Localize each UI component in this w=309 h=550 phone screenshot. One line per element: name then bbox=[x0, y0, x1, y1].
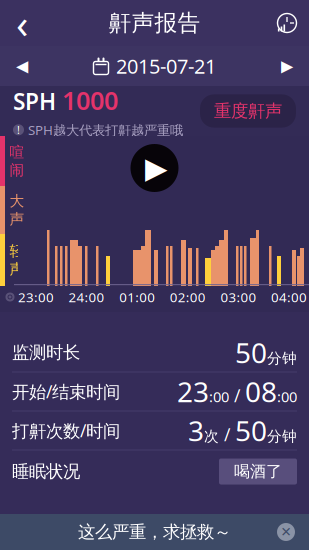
staticText: ▶ bbox=[281, 57, 293, 75]
staticText: ▶ bbox=[145, 151, 168, 185]
staticText: 这么严重，求拯救～ bbox=[78, 521, 231, 543]
staticText: 08 bbox=[245, 373, 277, 410]
staticText: ! bbox=[17, 123, 20, 137]
button[interactable]: 2015-07-21 bbox=[93, 46, 216, 86]
staticText: 3 bbox=[188, 412, 204, 449]
staticText: 1000 bbox=[62, 83, 118, 117]
button[interactable]: Back bbox=[0, 1, 44, 45]
button[interactable]: 这么严重，求拯救～ bbox=[0, 514, 309, 550]
staticText: 04:00 bbox=[271, 288, 307, 306]
staticText: 鼾声报告 bbox=[108, 9, 200, 37]
staticText: 50 bbox=[235, 412, 267, 449]
staticText: 喧 闹 bbox=[9, 143, 24, 179]
staticText: 重度鼾声 bbox=[214, 100, 282, 122]
staticText: 分钟 bbox=[267, 349, 297, 367]
staticText: 01:00 bbox=[119, 288, 155, 306]
staticText: / bbox=[229, 384, 245, 407]
button[interactable]: Next day bbox=[265, 46, 309, 86]
staticText: 监测时长 bbox=[12, 342, 80, 363]
button[interactable]: 重度鼾声 bbox=[200, 94, 296, 128]
staticText: 睡眠状况 bbox=[12, 461, 80, 482]
staticText: :00 bbox=[277, 387, 297, 406]
staticText: / bbox=[219, 423, 235, 446]
staticText: SPH bbox=[13, 86, 56, 116]
staticText: 2015-07-21 bbox=[116, 53, 216, 79]
staticText: 大 声 bbox=[9, 192, 24, 228]
staticText: 23 bbox=[177, 373, 209, 410]
staticText: 次 bbox=[204, 427, 219, 445]
staticText: ✕ bbox=[280, 524, 291, 539]
staticText: 23:00 bbox=[18, 288, 54, 306]
staticText: :00 bbox=[209, 387, 229, 406]
button[interactable]: Previous day bbox=[0, 46, 44, 86]
staticText: 喝酒了 bbox=[234, 462, 282, 481]
staticText: 开始/结束时间 bbox=[12, 380, 120, 403]
staticText: ◀ bbox=[16, 57, 28, 75]
staticText: 24:00 bbox=[69, 288, 105, 306]
button[interactable]: Play snoring recording bbox=[130, 144, 178, 192]
staticText: 轻 声 bbox=[9, 242, 24, 278]
staticText: 打鼾次数/时间 bbox=[12, 419, 120, 442]
staticText: 02:00 bbox=[170, 288, 206, 306]
staticText: SPH越大代表打鼾越严重哦 bbox=[28, 121, 183, 139]
button[interactable]: 喝酒了 bbox=[219, 458, 297, 484]
staticText: ‹ bbox=[16, 0, 28, 49]
staticText: 03:00 bbox=[220, 288, 256, 306]
staticText: 50 bbox=[235, 334, 267, 371]
button[interactable]: History bbox=[265, 1, 309, 45]
staticText: 分钟 bbox=[267, 427, 297, 445]
